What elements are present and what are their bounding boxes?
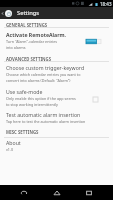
button[interactable]: Navigate up <box>0 7 13 19</box>
staticText: Settings <box>17 9 40 17</box>
staticText: About <box>6 139 21 146</box>
button[interactable]: Test automatic alarm insertion <box>0 111 113 124</box>
staticText: Activate RemoteAlarm. <box>6 31 67 38</box>
staticText: Test automatic alarm insertion <box>6 111 81 118</box>
button[interactable]: Activate RemoteAlarm. <box>0 31 113 50</box>
button[interactable]: Use safe-mode checkbox <box>91 95 100 104</box>
staticText: Use safe-mode <box>6 88 43 95</box>
button[interactable]: Back <box>16 185 32 200</box>
button[interactable]: About <box>0 139 113 152</box>
staticText: ADVANCED SETTINGS <box>6 56 52 62</box>
button[interactable]: Choose custom trigger-keyword <box>0 64 113 83</box>
staticText: 18:43 <box>100 1 112 7</box>
button[interactable]: Use safe-mode <box>0 88 113 107</box>
staticText: MISC SETTINGS <box>6 129 39 135</box>
button[interactable]: Recents <box>81 185 97 200</box>
staticText: Tap here to test the automatic alarm ins… <box>6 119 86 124</box>
staticText: Turn "Alarm"-calendar entries into alarm… <box>6 39 58 50</box>
button[interactable]: Home <box>49 185 65 200</box>
staticText: GENERAL SETTINGS <box>6 22 48 28</box>
staticText: Choose custom trigger-keyword <box>6 64 85 71</box>
staticText: Only enable this option if the app seems… <box>6 96 76 107</box>
button[interactable]: Activate RemoteAlarm toggle <box>86 38 101 45</box>
staticText: v1.0 <box>6 147 14 152</box>
staticText: Choose which calendar entries you want t… <box>6 72 81 83</box>
